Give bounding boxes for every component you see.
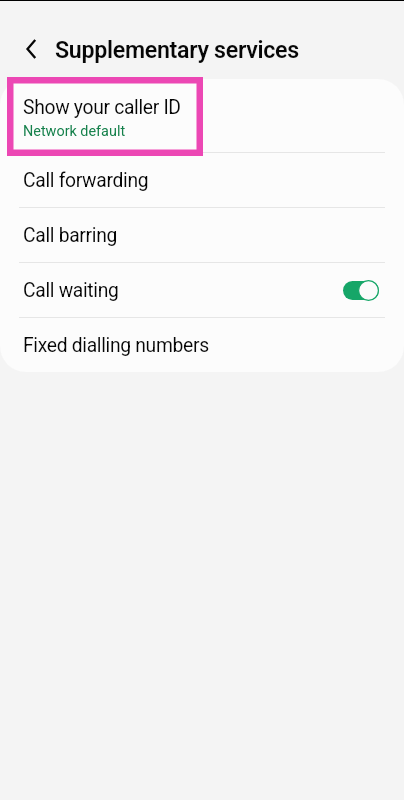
button[interactable]: Call forwarding [0, 153, 404, 207]
staticText: Show your caller ID [23, 96, 181, 119]
button[interactable]: Fixed dialling numbers [0, 318, 404, 372]
button[interactable]: Show your caller ID [0, 79, 404, 152]
staticText: Call forwarding [23, 169, 149, 192]
button[interactable]: Navigate up [17, 35, 45, 63]
staticText: Call waiting [23, 279, 343, 302]
button[interactable]: Call barring [0, 208, 404, 262]
button[interactable]: Call waiting [0, 263, 404, 317]
button[interactable]: Toggle Call waiting [343, 280, 379, 301]
staticText: Supplementary services [55, 36, 299, 63]
staticText: Fixed dialling numbers [23, 334, 209, 357]
staticText: Call barring [23, 224, 117, 247]
staticText: Network default [23, 123, 126, 140]
